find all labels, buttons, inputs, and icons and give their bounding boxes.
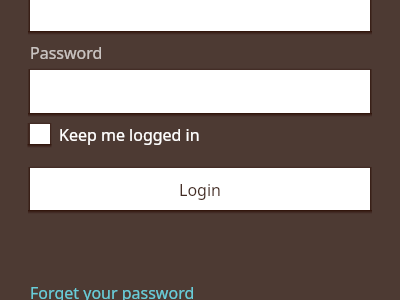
staticText: Forget your password: [30, 282, 195, 300]
staticText: Login: [179, 179, 221, 201]
button[interactable]: Forget your password: [30, 278, 210, 300]
staticText: Keep me logged in: [59, 124, 200, 146]
button[interactable]: Login: [30, 168, 370, 210]
staticText: Password: [30, 42, 103, 64]
button[interactable]: Keep me logged in: [29, 118, 190, 150]
